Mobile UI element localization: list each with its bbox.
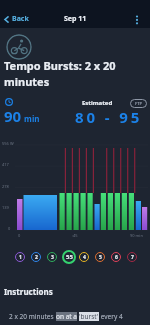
staticText: 0 (18, 233, 21, 238)
button[interactable]: 7 (127, 252, 137, 262)
staticText: Back (12, 14, 29, 24)
button[interactable]: 1 (15, 252, 25, 262)
staticText: on at a (56, 312, 77, 321)
staticText: :45 (72, 233, 78, 238)
staticText: 556 W (2, 141, 14, 146)
staticText: 90 min (130, 233, 143, 238)
staticText: FTP (135, 101, 142, 106)
staticText: 80 - 95 (75, 107, 143, 127)
staticText: 90 (4, 106, 22, 126)
staticText: every 4 (99, 312, 123, 321)
button[interactable]: 5 (95, 252, 105, 262)
staticText: 55 (66, 253, 73, 261)
staticText: 278 (2, 184, 9, 189)
staticText: 6 (115, 254, 118, 261)
button[interactable] (6, 34, 32, 60)
staticText: 'burst' (79, 312, 99, 321)
staticText: 4 (83, 254, 86, 261)
button[interactable]: 2 (31, 252, 41, 262)
staticText: minutes (4, 74, 50, 89)
staticText: 139 (2, 205, 9, 210)
staticText: 2 x 20 minutes (9, 312, 56, 321)
staticText: 3 (51, 254, 54, 261)
button[interactable]: 55 (62, 250, 76, 264)
staticText: 1 (19, 254, 22, 261)
staticText: min (22, 113, 40, 124)
staticText: 7 (131, 254, 134, 261)
button[interactable]: 4 (79, 252, 89, 262)
staticText: Estimated (82, 99, 113, 107)
staticText: 417 (2, 162, 9, 167)
staticText: 2 (35, 254, 38, 261)
staticText: 0 (8, 226, 11, 231)
button[interactable] (132, 15, 142, 25)
staticText: 5 (99, 254, 102, 261)
staticText: Instructions (4, 286, 53, 297)
button[interactable]: 3 (47, 252, 57, 262)
staticText: Sep 11 (64, 14, 87, 24)
staticText: Tempo Bursts: 2 x 20 (4, 58, 116, 73)
button[interactable]: Back (3, 14, 29, 24)
button[interactable]: 6 (111, 252, 121, 262)
